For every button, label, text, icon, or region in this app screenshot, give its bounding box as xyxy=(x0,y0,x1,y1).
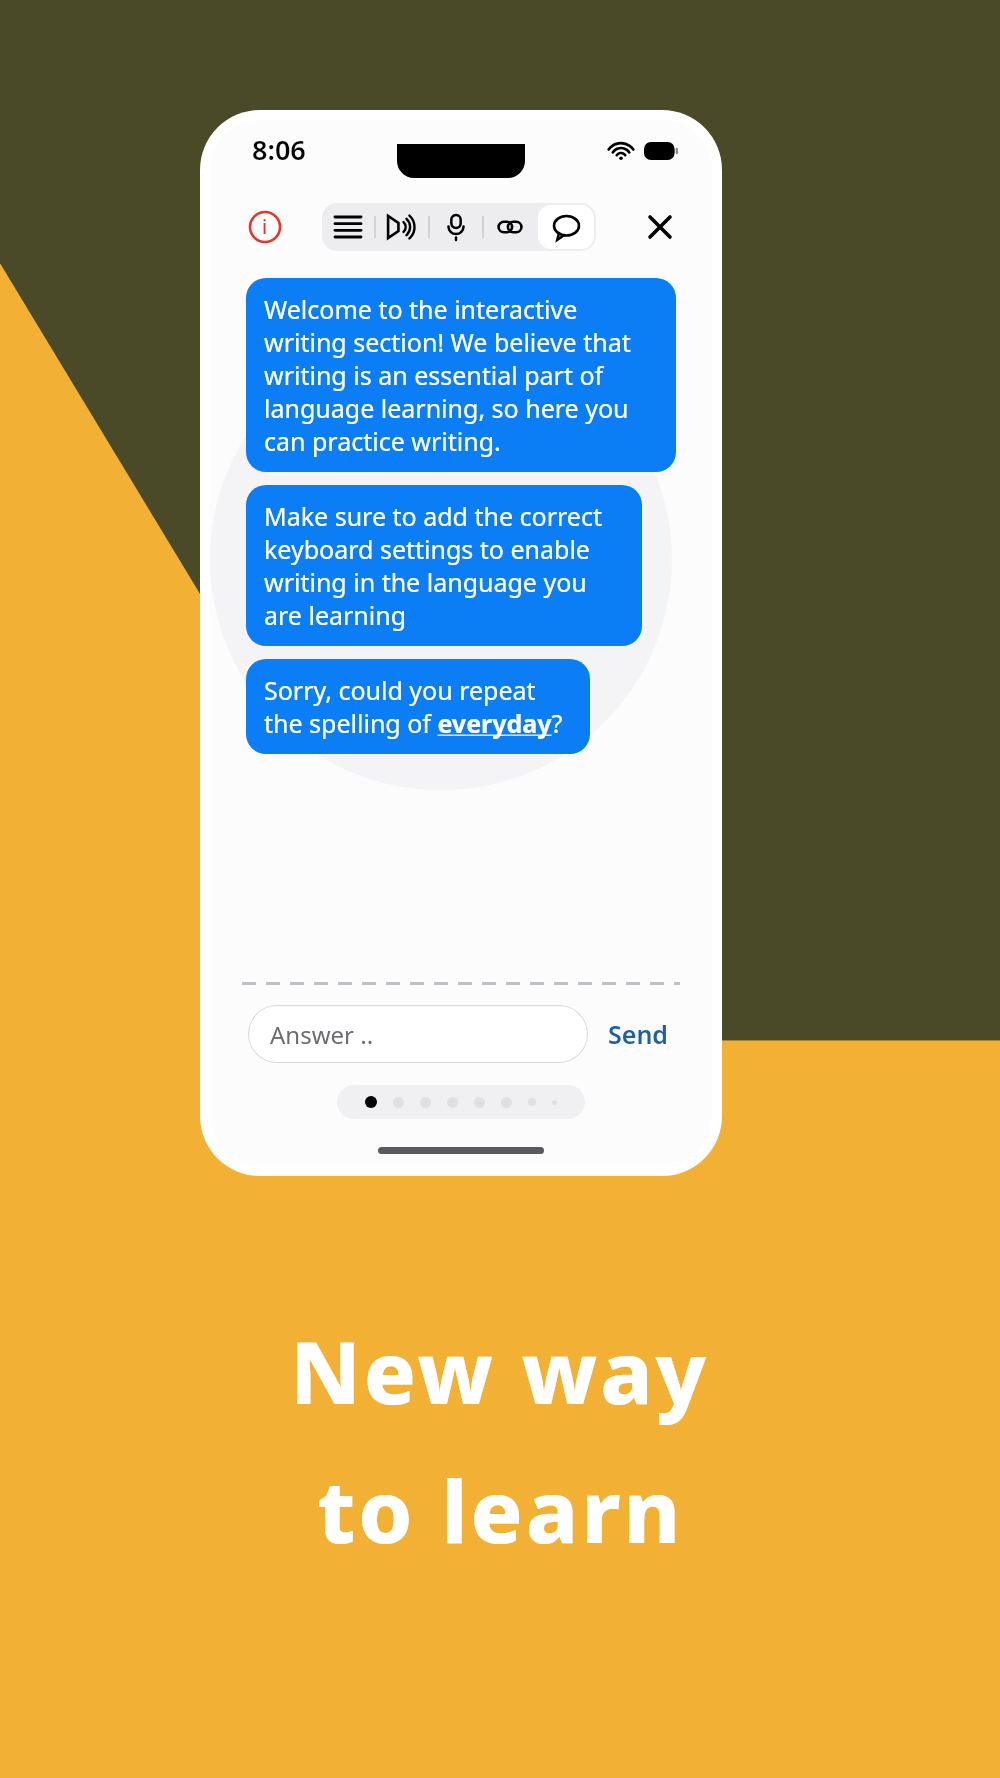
button[interactable]: Answer .. xyxy=(248,1005,588,1063)
button[interactable]: Chat xyxy=(538,205,594,249)
staticText: Sorry, could you repeat the spelling of … xyxy=(264,673,572,740)
staticText: Welcome to the interactive writing secti… xyxy=(264,292,658,458)
staticText: Send xyxy=(608,1017,668,1051)
staticText: to learn xyxy=(317,1451,684,1568)
staticText: Answer .. xyxy=(270,1018,374,1051)
button[interactable]: Send xyxy=(602,1011,674,1057)
staticText: 8:06 xyxy=(252,131,306,168)
button[interactable]: Info xyxy=(248,210,282,244)
staticText: i xyxy=(262,214,268,240)
button[interactable]: Welcome to the interactive writing secti… xyxy=(246,278,676,472)
button[interactable]: List xyxy=(322,203,374,251)
button[interactable]: Link xyxy=(484,203,536,251)
button[interactable]: Listen xyxy=(376,203,428,251)
button[interactable]: Close xyxy=(640,207,680,247)
staticText: New way xyxy=(290,1312,710,1429)
button[interactable]: Record xyxy=(430,203,482,251)
staticText: Make sure to add the correct keyboard se… xyxy=(264,499,624,632)
button[interactable]: Sorry, could you repeat the spelling of … xyxy=(246,659,590,754)
button[interactable]: Make sure to add the correct keyboard se… xyxy=(246,485,642,646)
